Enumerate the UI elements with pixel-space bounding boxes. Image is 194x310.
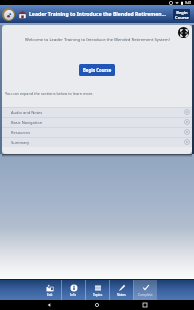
staticText: Leader Training to Introduce the Blended… [29,11,166,18]
button[interactable]: Home [17,9,28,20]
button[interactable]: Summary [2,137,192,147]
staticText: Topics [93,293,103,297]
button[interactable]: Begin Course [173,9,190,20]
button[interactable]: Exit [38,280,61,300]
staticText: Basic Navigation [11,120,43,125]
button[interactable]: Topics [86,280,109,300]
staticText: 9:41 [185,1,192,5]
staticText: Info [70,293,77,297]
button[interactable]: Basic Navigation [2,117,192,127]
button[interactable]: Complete [134,280,157,300]
button[interactable]: Seal [2,8,15,21]
staticText: Resources [11,130,31,135]
staticText: Summary [11,140,30,145]
button[interactable]: Fullscreen [178,27,189,38]
button[interactable]: Notes [110,280,133,300]
staticText: Begin Course [175,10,189,20]
staticText: Welcome to Leader Training to Introduce … [25,37,170,43]
button[interactable]: Begin Course [79,64,115,76]
button[interactable]: Back [44,300,54,310]
staticText: Complete [138,293,153,297]
button[interactable]: Audio and Notes [2,107,192,117]
button[interactable]: Recent apps [140,300,150,310]
staticText: Notes [117,293,126,297]
staticText: You can expand the sections below to lea… [5,91,94,96]
staticText: Exit [47,293,53,297]
staticText: Audio and Notes [11,110,43,115]
staticText: Begin Course [83,67,112,73]
button[interactable]: Home [92,300,102,310]
button[interactable]: Resources [2,127,192,137]
button[interactable]: Info [62,280,85,300]
